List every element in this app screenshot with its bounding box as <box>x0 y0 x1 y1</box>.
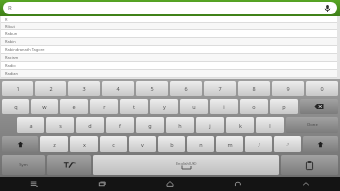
staticText: 9 <box>286 85 290 92</box>
button[interactable]: k <box>226 117 254 133</box>
button[interactable]: 4 <box>102 81 134 96</box>
button[interactable]: R <box>3 2 337 14</box>
button[interactable]: 5 <box>136 81 168 96</box>
button[interactable]: 9 <box>272 81 304 96</box>
button[interactable]: Handwriting <box>47 155 91 175</box>
button[interactable]: 7 <box>204 81 236 96</box>
staticText: R <box>8 4 12 12</box>
button[interactable]: Rabun <box>1 30 337 38</box>
button[interactable]: .? <box>274 136 301 152</box>
button[interactable]: Back <box>204 177 272 191</box>
button[interactable]: Shift <box>2 136 38 152</box>
staticText: 3 <box>82 85 86 92</box>
staticText: .? <box>286 142 289 147</box>
staticText: Rabun <box>5 31 18 36</box>
button[interactable]: c <box>100 136 127 152</box>
button[interactable]: r <box>90 99 118 114</box>
button[interactable]: Home <box>136 177 204 191</box>
button[interactable]: z <box>40 136 68 152</box>
staticText: g <box>148 122 152 129</box>
button[interactable]: Done <box>286 117 338 133</box>
button[interactable]: R <box>1 16 337 23</box>
button[interactable]: Hide keyboard <box>272 177 340 191</box>
staticText: b <box>170 141 174 148</box>
staticText: y <box>163 103 166 110</box>
button[interactable]: Shift <box>303 136 338 152</box>
staticText: n <box>199 141 203 148</box>
staticText: v <box>141 141 144 148</box>
button[interactable]: u <box>180 99 208 114</box>
staticText: d <box>88 122 92 129</box>
button[interactable]: 2 <box>35 81 66 96</box>
button[interactable]: x <box>70 136 98 152</box>
button[interactable]: j <box>196 117 224 133</box>
button[interactable]: ,! <box>245 136 272 152</box>
button[interactable]: p <box>270 99 298 114</box>
button[interactable]: l <box>256 117 284 133</box>
button[interactable]: v <box>129 136 156 152</box>
staticText: Rabindranath Tagore <box>5 47 45 52</box>
staticText: 8 <box>252 85 256 92</box>
button[interactable]: w <box>31 99 58 114</box>
button[interactable]: Rabin <box>1 38 337 46</box>
staticText: Racism <box>5 55 19 60</box>
staticText: m <box>227 141 233 148</box>
button[interactable]: g <box>136 117 164 133</box>
button[interactable]: Racism <box>1 54 337 62</box>
staticText: Sym <box>19 162 28 168</box>
staticText: c <box>112 141 115 148</box>
button[interactable]: English(UK) <box>93 155 279 175</box>
staticText: 2 <box>49 85 53 92</box>
button[interactable]: Sym <box>2 155 45 175</box>
button[interactable]: 3 <box>68 81 100 96</box>
button[interactable]: Radian <box>1 70 337 78</box>
staticText: r <box>103 103 106 110</box>
staticText: 4 <box>116 85 120 92</box>
button[interactable]: i <box>210 99 238 114</box>
button[interactable]: Clipboard <box>281 155 338 175</box>
button[interactable]: d <box>76 117 104 133</box>
button[interactable]: Backspace <box>300 99 338 114</box>
button[interactable]: Menu <box>0 177 68 191</box>
staticText: English(UK) <box>176 161 197 166</box>
staticText: 1 <box>16 85 20 92</box>
button[interactable]: Rabindranath Tagore <box>1 46 337 54</box>
staticText: h <box>178 122 182 129</box>
staticText: t <box>133 103 135 110</box>
button[interactable]: q <box>2 99 29 114</box>
staticText: Radian <box>5 71 18 76</box>
button[interactable]: e <box>60 99 88 114</box>
staticText: s <box>59 122 62 129</box>
button[interactable]: Recents <box>68 177 136 191</box>
staticText: i <box>223 103 225 110</box>
button[interactable]: 8 <box>238 81 270 96</box>
button[interactable]: m <box>216 136 243 152</box>
staticText: z <box>53 141 56 148</box>
button[interactable]: o <box>240 99 268 114</box>
staticText: u <box>192 103 196 110</box>
button[interactable]: 1 <box>2 81 33 96</box>
staticText: x <box>83 141 86 148</box>
button[interactable]: Radio <box>1 62 337 70</box>
button[interactable]: Voice search <box>323 4 332 13</box>
button[interactable]: a <box>17 117 44 133</box>
staticText: k <box>239 122 242 129</box>
button[interactable]: y <box>150 99 178 114</box>
staticText: q <box>14 103 18 110</box>
button[interactable]: Ribut <box>1 23 337 30</box>
staticText: Rabin <box>5 39 16 44</box>
staticText: 7 <box>218 85 222 92</box>
button[interactable]: 6 <box>170 81 202 96</box>
button[interactable]: 0 <box>306 81 338 96</box>
button[interactable]: f <box>106 117 134 133</box>
staticText: Ribut <box>5 24 15 29</box>
button[interactable]: t <box>120 99 148 114</box>
staticText: 6 <box>184 85 188 92</box>
staticText: 0 <box>320 85 324 92</box>
button[interactable]: s <box>46 117 74 133</box>
button[interactable]: n <box>187 136 214 152</box>
staticText: R <box>5 17 8 22</box>
button[interactable]: b <box>158 136 185 152</box>
staticText: f <box>119 122 121 129</box>
button[interactable]: h <box>166 117 194 133</box>
